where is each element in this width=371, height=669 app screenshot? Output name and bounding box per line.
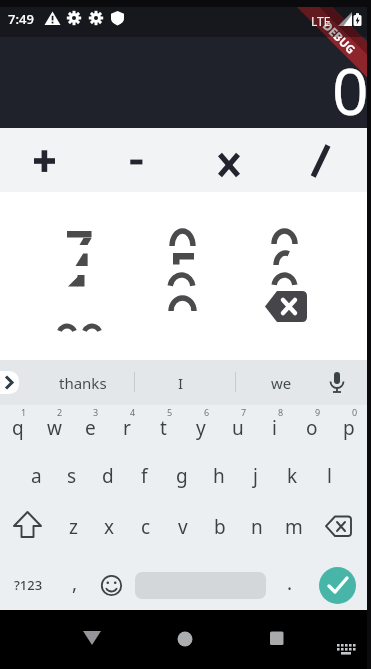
button[interactable] (0, 501, 55, 553)
button[interactable]: u (219, 405, 256, 451)
staticText: thanks (59, 373, 107, 393)
staticText: x (104, 514, 115, 540)
staticText: 0 (332, 47, 369, 134)
button[interactable] (29, 192, 131, 360)
staticText: p (343, 415, 355, 441)
staticText: w (47, 415, 62, 441)
button[interactable] (91, 128, 183, 192)
button[interactable]: z (55, 501, 91, 553)
staticText: 2 (57, 406, 63, 418)
button[interactable] (259, 630, 295, 658)
staticText: e (85, 415, 96, 441)
staticText: 9 (315, 406, 321, 418)
button[interactable] (93, 553, 130, 610)
button[interactable]: c (127, 501, 164, 553)
button[interactable]: h (200, 451, 237, 501)
staticText: k (287, 463, 298, 489)
staticText: 6 (204, 406, 210, 418)
staticText: m (285, 514, 303, 540)
button[interactable]: s (54, 451, 90, 501)
button[interactable] (275, 128, 367, 192)
button[interactable]: p (330, 405, 367, 451)
staticText: z (69, 514, 78, 540)
button[interactable]: m (275, 501, 312, 553)
button[interactable]: a (18, 451, 54, 501)
staticText: DEBUG (319, 18, 359, 58)
button[interactable]: g (163, 451, 200, 501)
staticText: v (178, 514, 188, 540)
button[interactable] (74, 630, 110, 658)
staticText: we (271, 373, 292, 393)
staticText: 0 (352, 406, 358, 418)
button[interactable] (322, 360, 356, 405)
staticText: g (176, 463, 188, 489)
button[interactable]: t (145, 405, 182, 451)
staticText: r (123, 415, 131, 441)
staticText: ?123 (14, 576, 43, 594)
staticText: b (214, 514, 226, 540)
button[interactable]: i (256, 405, 293, 451)
button[interactable] (131, 192, 234, 360)
staticText: 7 (241, 406, 247, 418)
button[interactable]: x (91, 501, 127, 553)
button[interactable]: r (108, 405, 145, 451)
button[interactable] (308, 553, 367, 610)
staticText: 1 (21, 406, 27, 418)
button[interactable] (234, 192, 337, 360)
staticText: c (141, 514, 151, 540)
button[interactable]: y (182, 405, 219, 451)
button[interactable] (0, 371, 19, 394)
button[interactable] (167, 630, 203, 658)
staticText: n (251, 514, 263, 540)
staticText: 4 (130, 406, 136, 418)
button[interactable]: b (201, 501, 238, 553)
button[interactable] (329, 628, 365, 660)
button[interactable]: thanks (47, 360, 119, 405)
staticText: h (213, 463, 225, 489)
button[interactable] (183, 128, 275, 192)
staticText: j (253, 463, 258, 489)
button[interactable]: we (245, 360, 317, 405)
staticText: i (272, 415, 277, 441)
staticText: l (327, 463, 332, 489)
button[interactable]: w (36, 405, 72, 451)
staticText: a (31, 463, 42, 489)
staticText: 3 (93, 406, 99, 418)
staticText: d (102, 463, 114, 489)
staticText: 7:49 (8, 10, 34, 28)
staticText: t (160, 415, 167, 441)
staticText: . (287, 570, 293, 596)
button[interactable]: I (145, 360, 217, 405)
button[interactable]: o (293, 405, 330, 451)
button[interactable]: ?123 (0, 553, 56, 610)
button[interactable]: v (164, 501, 201, 553)
staticText: s (67, 463, 77, 489)
button[interactable]: d (90, 451, 126, 501)
button[interactable]: e (72, 405, 108, 451)
staticText: f (141, 463, 148, 489)
staticText: q (12, 415, 24, 441)
button[interactable]: j (237, 451, 274, 501)
staticText: 8 (278, 406, 284, 418)
button[interactable]: l (311, 451, 348, 501)
staticText: o (306, 415, 318, 441)
staticText: LTE (311, 13, 331, 29)
staticText: , (72, 570, 78, 596)
button[interactable]: f (126, 451, 163, 501)
button[interactable]: n (238, 501, 275, 553)
staticText: y (196, 415, 206, 441)
button[interactable] (0, 128, 91, 192)
button[interactable]: , (56, 553, 93, 610)
staticText: u (232, 415, 244, 441)
button[interactable] (312, 501, 367, 553)
staticText: I (178, 373, 184, 393)
button[interactable]: q (0, 405, 36, 451)
staticText: 5 (167, 406, 173, 418)
button[interactable]: k (274, 451, 311, 501)
button[interactable]: . (271, 553, 308, 610)
